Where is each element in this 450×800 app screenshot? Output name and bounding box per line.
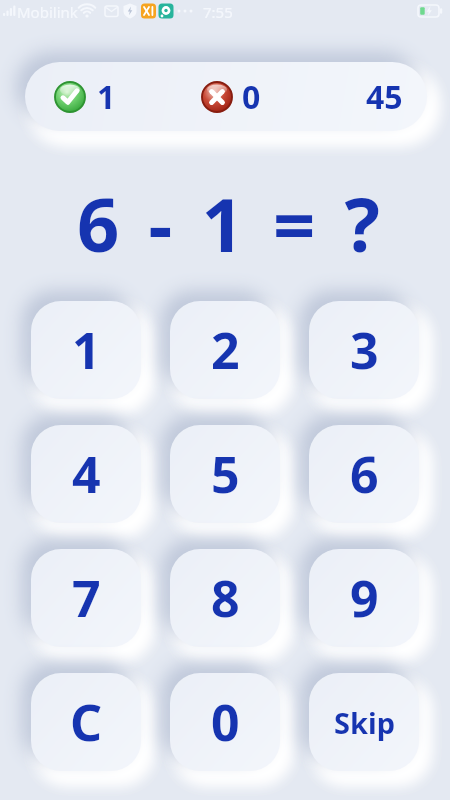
button[interactable]: 2 <box>170 301 280 399</box>
staticText: Mobilink <box>17 2 78 22</box>
staticText: 1 <box>72 316 101 384</box>
button[interactable]: 7 <box>31 549 141 647</box>
button[interactable]: 9 <box>309 549 419 647</box>
button[interactable]: Skip <box>309 673 419 771</box>
staticText: 0 <box>211 688 240 756</box>
button[interactable]: 5 <box>170 425 280 523</box>
staticText: 2 <box>211 316 240 384</box>
button[interactable]: 6 <box>309 425 419 523</box>
button[interactable]: 8 <box>170 549 280 647</box>
staticText: 0 <box>242 75 261 119</box>
staticText: 6 - 1 = ? <box>77 173 385 273</box>
staticText: Skip <box>334 703 395 742</box>
staticText: 3 <box>350 316 379 384</box>
staticText: 9 <box>350 564 379 632</box>
button[interactable]: 4 <box>31 425 141 523</box>
button[interactable]: C <box>31 673 141 771</box>
staticText: 1 <box>97 75 116 119</box>
staticText: 4 <box>72 440 101 508</box>
staticText: C <box>70 688 103 756</box>
button[interactable]: 3 <box>309 301 419 399</box>
staticText: 7:55 <box>203 2 233 22</box>
staticText: 8 <box>211 564 240 632</box>
button[interactable] <box>25 62 427 131</box>
button[interactable]: 0 <box>170 673 280 771</box>
staticText: 7 <box>72 564 101 632</box>
staticText: 45 <box>366 75 403 119</box>
staticText: 6 <box>350 440 379 508</box>
button[interactable]: 1 <box>31 301 141 399</box>
staticText: 5 <box>211 440 240 508</box>
